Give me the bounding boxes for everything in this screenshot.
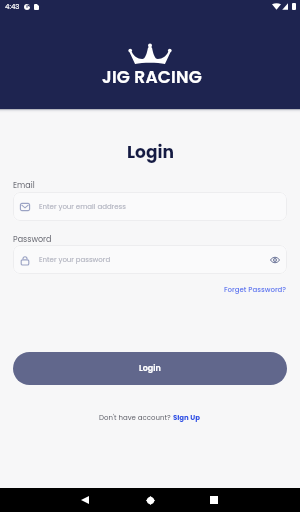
button[interactable]: Enter your email address [13, 192, 287, 221]
staticText: Forget Password? [224, 285, 287, 295]
staticText: Enter your email address [39, 202, 126, 212]
staticText: Login [127, 140, 174, 164]
staticText: Password [13, 234, 52, 245]
button[interactable]: Enter your password [13, 245, 287, 274]
staticText: Don't have account? [99, 413, 173, 423]
button[interactable]: Back [65, 488, 105, 512]
staticText: Enter your password [39, 255, 111, 265]
button[interactable]: Forget Password? [224, 285, 287, 295]
staticText: Sign Up [173, 413, 201, 423]
button[interactable]: Recent apps [194, 488, 234, 512]
button[interactable]: Login [13, 352, 287, 385]
staticText: Email [13, 180, 35, 191]
staticText: Login [139, 363, 161, 374]
button[interactable]: Show password [268, 253, 281, 266]
button[interactable]: Sign Up [173, 413, 201, 423]
button[interactable]: Home [130, 488, 170, 512]
staticText: JIG RACING [102, 65, 202, 89]
staticText: 4:43 [5, 2, 20, 12]
